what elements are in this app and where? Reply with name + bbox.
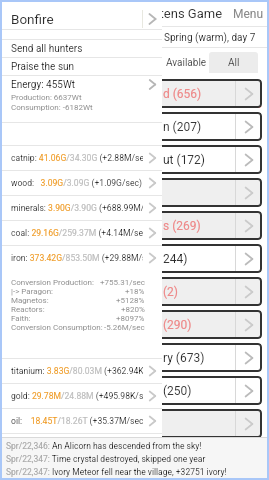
staticText: ry (673) [163,351,205,365]
button[interactable]: (290) [140,310,262,339]
button[interactable]: Available [163,52,209,73]
button[interactable]: oil: 18.45T/18.26T (+35.37M/sec) [0,409,162,433]
button[interactable]: Bonfire [0,9,162,29]
staticText: Spr/22,347: Time crystal destroyed, skip… [6,454,206,464]
button[interactable]: Praise the sun [0,58,162,75]
button[interactable]: wood: 3.09G/3.09G (+1.09G/sec) [0,171,162,195]
button[interactable]: s (269) [140,211,262,240]
button[interactable]: coal: 29.16G/259.37M (+4.14M/sec) [0,221,162,245]
button[interactable]: Send all hunters [0,40,162,57]
staticText: Praise the sun [11,61,75,73]
staticText: Reactors: [11,305,45,314]
staticText: Bonfire [11,11,54,27]
staticText: Energy: 455Wt [11,79,76,91]
staticText: ut (172) [163,153,206,167]
button[interactable]: n (207) [140,112,262,141]
staticText: (250) [163,384,192,398]
staticText: Faith: [11,314,31,323]
button[interactable]: catnip: 41.06G/34.30G (+2.88M/sec) [0,146,162,170]
staticText: iron: 373.42G/853.50M (+29.88M/se [11,253,143,263]
staticText: +820% [121,305,145,314]
button[interactable] [140,409,262,438]
button[interactable]: d (656) [140,79,262,108]
staticText: Spring (warm), day 7 [164,32,256,44]
staticText: oil: 18.45T/18.26T (+35.37M/sec) [11,416,143,426]
staticText: Conversion Production: [11,278,94,287]
staticText: Spr/22,347: Ivory Meteor fell near the v… [6,467,227,477]
button[interactable]: Energy: 455Wt [0,76,162,93]
staticText: Production: 6637Wt [11,93,82,102]
staticText: (2) [163,285,179,299]
staticText: -5.26M/sec [104,323,145,332]
staticText: catnip: 41.06G/34.30G (+2.88M/sec) [11,153,143,163]
staticText: All [228,57,240,69]
button[interactable]: ry (673) [140,343,262,372]
button[interactable]: titanium: 3.83G/80.03M (+362.94K/s [0,359,162,383]
button[interactable]: iron: 373.42G/853.50M (+29.88M/se [0,246,162,270]
button[interactable] [140,178,262,207]
staticText: titanium: 3.83G/80.03M (+362.94K/s [11,366,143,376]
staticText: Magnetos: [11,296,49,305]
staticText: |-> Paragon: [11,287,54,296]
staticText: coal: 29.16G/259.37M (+4.14M/sec) [11,228,143,238]
button[interactable]: gold: 29.78M/24.88M (+495.98K/sec [0,384,162,408]
staticText: +755.31/sec [100,278,145,287]
staticText: n (207) [163,120,202,134]
staticText: +8097% [116,314,145,323]
button[interactable]: (2) [140,277,262,306]
button[interactable]: (250) [140,376,262,405]
staticText: Send all hunters [11,43,83,55]
staticText: 244) [163,252,188,266]
staticText: gold: 29.78M/24.88M (+495.98K/sec [11,391,143,401]
staticText: Menu [233,7,264,21]
staticText: Conversion Consumption: [11,323,103,332]
staticText: wood: 3.09G/3.09G (+1.09G/sec) [11,178,142,188]
button[interactable]: Menu [232,3,265,25]
staticText: Consumption: -6182Wt [11,103,93,112]
staticText: +18% [125,287,145,296]
staticText: Kittens Game [144,6,223,21]
button[interactable]: minerals: 3.90G/3.90G (+688.99M/s [0,196,162,220]
staticText: (290) [163,318,192,332]
button[interactable]: All [209,52,258,73]
button[interactable]: 244) [140,244,262,273]
staticText: Spr/22,346: An Alicorn has descended fro… [6,441,202,451]
staticText: Available [166,57,207,69]
staticText: s (269) [163,219,201,233]
button[interactable]: ut (172) [140,145,262,174]
staticText: +5128% [116,296,145,305]
staticText: d (656) [163,87,202,101]
staticText: minerals: 3.90G/3.90G (+688.99M/s [11,203,143,213]
